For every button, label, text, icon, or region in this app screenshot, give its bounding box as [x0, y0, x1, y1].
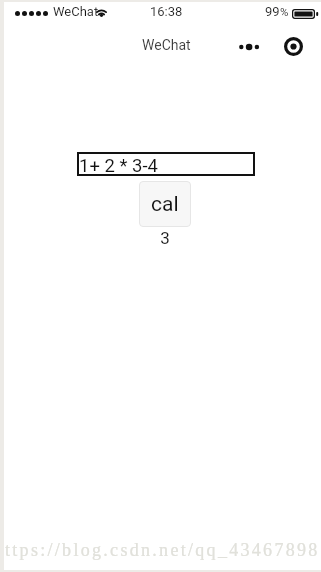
- staticText: 16:38: [150, 4, 183, 19]
- staticText: %: [280, 5, 289, 18]
- staticText: ttps://blog.csdn.net/qq_43467898: [5, 540, 320, 560]
- button[interactable]: cal: [139, 181, 191, 227]
- button[interactable]: More options: [236, 36, 262, 58]
- staticText: WeChat: [53, 4, 99, 19]
- staticText: 99: [265, 4, 280, 19]
- button[interactable]: Close mini program: [280, 33, 306, 59]
- staticText: WeChat: [142, 37, 191, 53]
- staticText: 1+ 2 * 3-4: [79, 155, 158, 177]
- staticText: 3: [151, 228, 179, 248]
- button[interactable]: 1+ 2 * 3-4: [77, 152, 255, 176]
- staticText: cal: [151, 192, 179, 217]
